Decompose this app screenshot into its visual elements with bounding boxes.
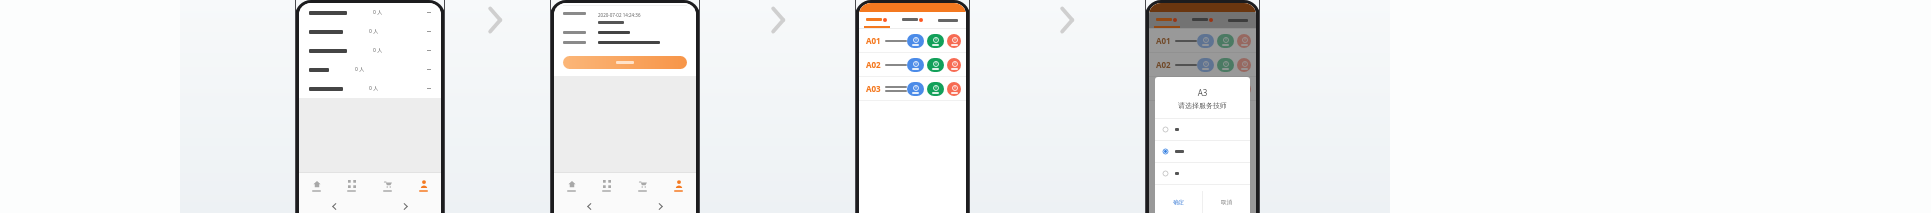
staticText: 确定 [1173, 199, 1184, 206]
staticText: A3 [1155, 87, 1250, 98]
button[interactable]: 0 人 [299, 22, 441, 41]
button[interactable]: 0 人 [299, 3, 441, 22]
button[interactable]: Action [1217, 58, 1234, 72]
button[interactable]: Tab 2 [589, 173, 624, 199]
staticText: 0 人 [373, 9, 383, 16]
button[interactable] [1155, 119, 1250, 140]
button[interactable] [1184, 12, 1220, 28]
button[interactable]: 0 人 [299, 41, 441, 60]
button[interactable]: Action [1237, 82, 1251, 96]
staticText: 0 人 [355, 66, 365, 73]
staticText: 取消 [1221, 199, 1232, 206]
button[interactable]: 0 人 [299, 79, 441, 98]
button[interactable]: Action [927, 82, 944, 96]
button[interactable] [1155, 141, 1250, 162]
button[interactable]: Tab 4 [660, 173, 696, 199]
button[interactable]: A03 [859, 77, 966, 100]
button[interactable] [930, 12, 966, 28]
button[interactable]: Action [947, 82, 961, 96]
button[interactable]: Action [1237, 34, 1251, 48]
button[interactable]: Tab 4 [405, 173, 441, 199]
button[interactable] [1149, 12, 1184, 28]
button[interactable]: 确定 [1155, 191, 1202, 213]
staticText: 2020-07-02 14:24:36 [598, 12, 641, 18]
button[interactable]: Tab 1 [554, 173, 589, 199]
button[interactable] [1220, 12, 1256, 28]
button[interactable]: Action [907, 82, 924, 96]
button[interactable]: A01 [859, 29, 966, 52]
button[interactable]: Action [1197, 58, 1214, 72]
button[interactable]: Tab 1 [299, 173, 334, 199]
staticText: A01 [1156, 35, 1171, 46]
button[interactable]: A03 [1149, 77, 1256, 100]
button[interactable]: Action [927, 34, 944, 48]
staticText: 0 人 [369, 85, 379, 92]
button[interactable]: Action [1197, 34, 1214, 48]
staticText: 请选择服务技师 [1155, 101, 1250, 110]
button[interactable]: Tab 3 [369, 173, 405, 199]
button[interactable] [563, 56, 687, 69]
button[interactable]: A01 [1149, 29, 1256, 52]
button[interactable]: 取消 [1203, 191, 1250, 213]
staticText: A01 [866, 35, 881, 46]
button[interactable]: Action [907, 58, 924, 72]
button[interactable]: A02 [1149, 53, 1256, 76]
button[interactable] [859, 12, 894, 28]
button[interactable]: Action [927, 58, 944, 72]
button[interactable]: Action [947, 34, 961, 48]
staticText: A02 [1156, 59, 1171, 70]
button[interactable]: A02 [859, 53, 966, 76]
button[interactable]: Action [1197, 82, 1214, 96]
button[interactable]: Action [907, 34, 924, 48]
button[interactable] [1155, 163, 1250, 184]
staticText: A02 [866, 59, 881, 70]
button[interactable]: Tab 3 [624, 173, 660, 199]
button[interactable] [894, 12, 930, 28]
button[interactable]: Action [1217, 34, 1234, 48]
button[interactable]: Action [947, 58, 961, 72]
button[interactable]: Action [1237, 58, 1251, 72]
button[interactable]: Tab 2 [334, 173, 369, 199]
staticText: 0 人 [369, 28, 379, 35]
staticText: A03 [866, 83, 881, 94]
staticText: 0 人 [373, 47, 383, 54]
button[interactable]: 0 人 [299, 60, 441, 79]
